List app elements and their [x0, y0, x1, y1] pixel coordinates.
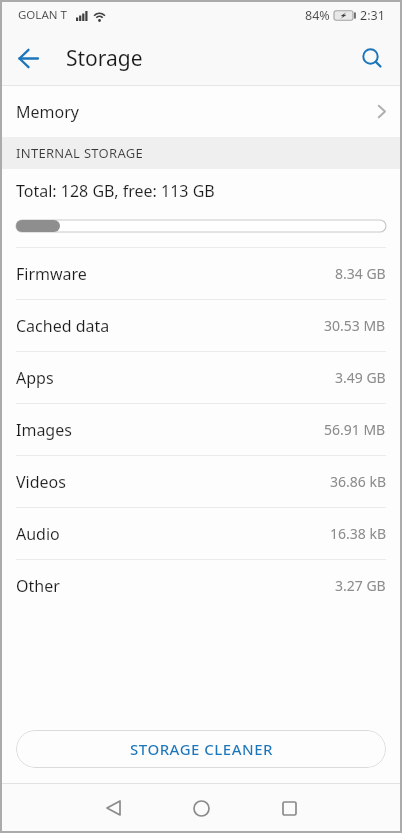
button[interactable]: Memory — [0, 86, 402, 137]
button[interactable]: Other — [0, 560, 402, 611]
staticText: Other — [16, 575, 60, 597]
staticText: Storage — [66, 44, 143, 73]
button[interactable]: Videos — [0, 456, 402, 507]
staticText: 30.53 MB — [324, 316, 386, 335]
button[interactable]: Cached data — [0, 300, 402, 351]
staticText: 8.34 GB — [335, 264, 386, 283]
staticText: Audio — [16, 523, 60, 545]
staticText: Memory — [16, 101, 79, 123]
button[interactable] — [69, 783, 157, 833]
button[interactable] — [346, 30, 398, 86]
staticText: 56.91 MB — [324, 420, 386, 439]
staticText: GOLAN T — [18, 7, 67, 23]
button[interactable]: Audio — [0, 508, 402, 559]
staticText: INTERNAL STORAGE — [16, 144, 144, 162]
staticText: 3.27 GB — [335, 576, 386, 595]
staticText: 16.38 kB — [330, 524, 386, 543]
staticText: Firmware — [16, 263, 87, 285]
staticText: 2:31 — [360, 7, 385, 24]
staticText: Cached data — [16, 315, 110, 337]
button[interactable] — [157, 783, 245, 833]
button[interactable]: Firmware — [0, 248, 402, 299]
staticText: 84% — [305, 7, 330, 24]
staticText: STORAGE CLEANER — [130, 739, 273, 759]
button[interactable] — [0, 30, 56, 86]
staticText: Images — [16, 419, 72, 441]
staticText: Apps — [16, 367, 54, 389]
button[interactable] — [245, 783, 333, 833]
button[interactable]: STORAGE CLEANER — [16, 730, 386, 768]
staticText: Videos — [16, 471, 66, 493]
staticText: Total: 128 GB, free: 113 GB — [16, 180, 215, 202]
button[interactable]: Apps — [0, 352, 402, 403]
button[interactable]: Images — [0, 404, 402, 455]
staticText: 3.49 GB — [335, 368, 386, 387]
staticText: 36.86 kB — [330, 472, 386, 491]
